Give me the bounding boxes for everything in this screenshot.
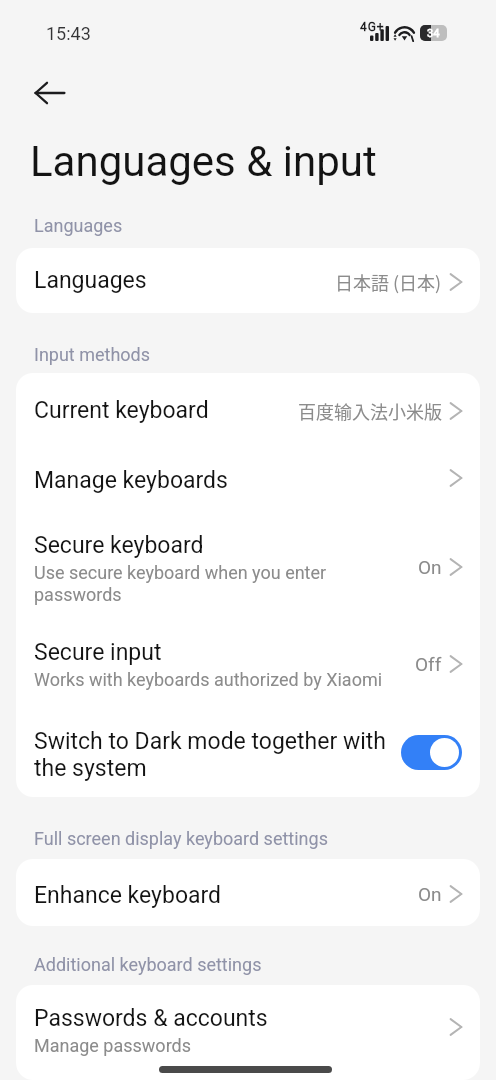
staticText: Off xyxy=(415,653,442,675)
staticText: On xyxy=(418,556,442,578)
button[interactable]: Switch to Dark mode together with the sy… xyxy=(16,704,480,797)
staticText: Current keyboard xyxy=(34,397,209,424)
button[interactable]: Passwords & accounts xyxy=(16,985,480,1070)
staticText: Manage keyboards xyxy=(34,467,228,494)
staticText: Full screen display keyboard settings xyxy=(34,828,328,849)
button[interactable]: Secure input xyxy=(16,615,480,704)
button[interactable]: Secure keyboard xyxy=(16,508,480,615)
staticText: 15:43 xyxy=(46,23,91,44)
button[interactable]: Enhance keyboard xyxy=(16,859,480,926)
staticText: Secure keyboard xyxy=(34,532,204,559)
staticText: Switch to Dark mode together with the sy… xyxy=(34,728,392,782)
button[interactable]: Back xyxy=(20,58,80,118)
staticText: 34 xyxy=(427,27,440,40)
staticText: Languages & input xyxy=(30,137,377,186)
button[interactable]: Manage keyboards xyxy=(16,443,480,508)
staticText: Secure input xyxy=(34,639,162,666)
staticText: Languages xyxy=(34,215,123,236)
staticText: Additional keyboard settings xyxy=(34,954,262,975)
button[interactable]: Languages xyxy=(16,248,480,313)
staticText: Passwords & accounts xyxy=(34,1005,268,1032)
staticText: Works with keyboards authorized by Xiaom… xyxy=(34,669,383,690)
button[interactable]: Current keyboard xyxy=(16,373,480,443)
staticText: 日本語 (日本) xyxy=(335,269,442,295)
staticText: Use secure keyboard when you enter passw… xyxy=(34,562,334,605)
staticText: On xyxy=(418,883,442,905)
staticText: 百度输入法小米版 xyxy=(298,398,442,424)
staticText: Enhance keyboard xyxy=(34,882,222,909)
staticText: Languages xyxy=(34,267,147,294)
staticText: Input methods xyxy=(34,344,151,365)
staticText: Manage passwords xyxy=(34,1035,191,1056)
staticText: 4G+ xyxy=(360,20,385,34)
